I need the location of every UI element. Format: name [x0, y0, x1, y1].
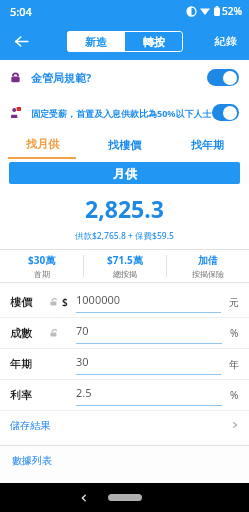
staticText: 月供 [113, 166, 137, 181]
staticText: 按揭保險 [192, 269, 224, 279]
staticText: 2,825.3 [85, 193, 164, 224]
staticText: 年 [229, 358, 239, 371]
button[interactable]: 固定受薪，首置及入息供款比為50%以下人士 [0, 95, 249, 130]
button[interactable]: 儲存結果 [0, 411, 249, 439]
staticText: 70 [76, 323, 89, 338]
button[interactable]: 金管局規範? [0, 60, 249, 95]
staticText: 總按揭 [113, 269, 137, 279]
staticText: 數據列表 [12, 454, 52, 467]
staticText: 年期 [10, 357, 42, 371]
button[interactable]: 找樓價 [83, 130, 166, 162]
staticText: 找年期 [191, 138, 224, 152]
staticText: 1000000 [76, 292, 121, 307]
staticText: 找月供 [26, 137, 59, 151]
button[interactable]: 樓價 [0, 287, 249, 317]
staticText: 成數 [10, 326, 42, 340]
button[interactable]: 加借 [167, 250, 249, 282]
staticText: $71.5萬 [107, 253, 143, 267]
button[interactable]: $71.5萬 [84, 250, 166, 282]
button[interactable]: Back [6, 26, 36, 56]
staticText: 元 [229, 296, 239, 309]
staticText: 樓價 [10, 295, 42, 309]
staticText: 供款$2,765.8 + 保費$59.5 [75, 230, 174, 242]
button[interactable]: 月供 [9, 162, 240, 184]
staticText: 2.5 [76, 385, 92, 400]
staticText: 固定受薪，首置及入息供款比為50%以下人士 [31, 107, 212, 119]
staticText: 儲存結果 [10, 419, 50, 432]
staticText: % [230, 388, 239, 402]
button[interactable]: 轉按 [125, 31, 183, 52]
button[interactable]: Home [108, 494, 142, 501]
button[interactable]: Toggle [212, 104, 239, 121]
button[interactable]: 成數 [0, 318, 249, 348]
staticText: 加借 [198, 254, 218, 267]
button[interactable]: Toggle [207, 69, 239, 86]
button[interactable]: Back [74, 488, 94, 508]
button[interactable]: 新造 [67, 31, 125, 52]
staticText: 紀錄 [215, 34, 237, 48]
button[interactable]: 年期 [0, 349, 249, 379]
staticText: 首期 [34, 269, 50, 279]
staticText: 找樓價 [108, 138, 141, 152]
staticText: $ [62, 295, 68, 309]
button[interactable]: 利率 [0, 380, 249, 410]
button[interactable]: 找月供 [0, 130, 83, 162]
staticText: 52% [222, 4, 242, 18]
staticText: 轉按 [143, 35, 165, 49]
button[interactable]: 找年期 [166, 130, 249, 162]
button[interactable]: $30萬 [0, 250, 83, 282]
staticText: 新造 [85, 35, 107, 49]
staticText: 利率 [10, 388, 42, 402]
staticText: 5:04 [10, 4, 32, 19]
staticText: 30 [76, 354, 89, 369]
staticText: $30萬 [28, 253, 56, 267]
staticText: % [230, 326, 239, 340]
staticText: 金管局規範? [31, 70, 92, 85]
button[interactable]: 紀錄 [211, 28, 241, 54]
